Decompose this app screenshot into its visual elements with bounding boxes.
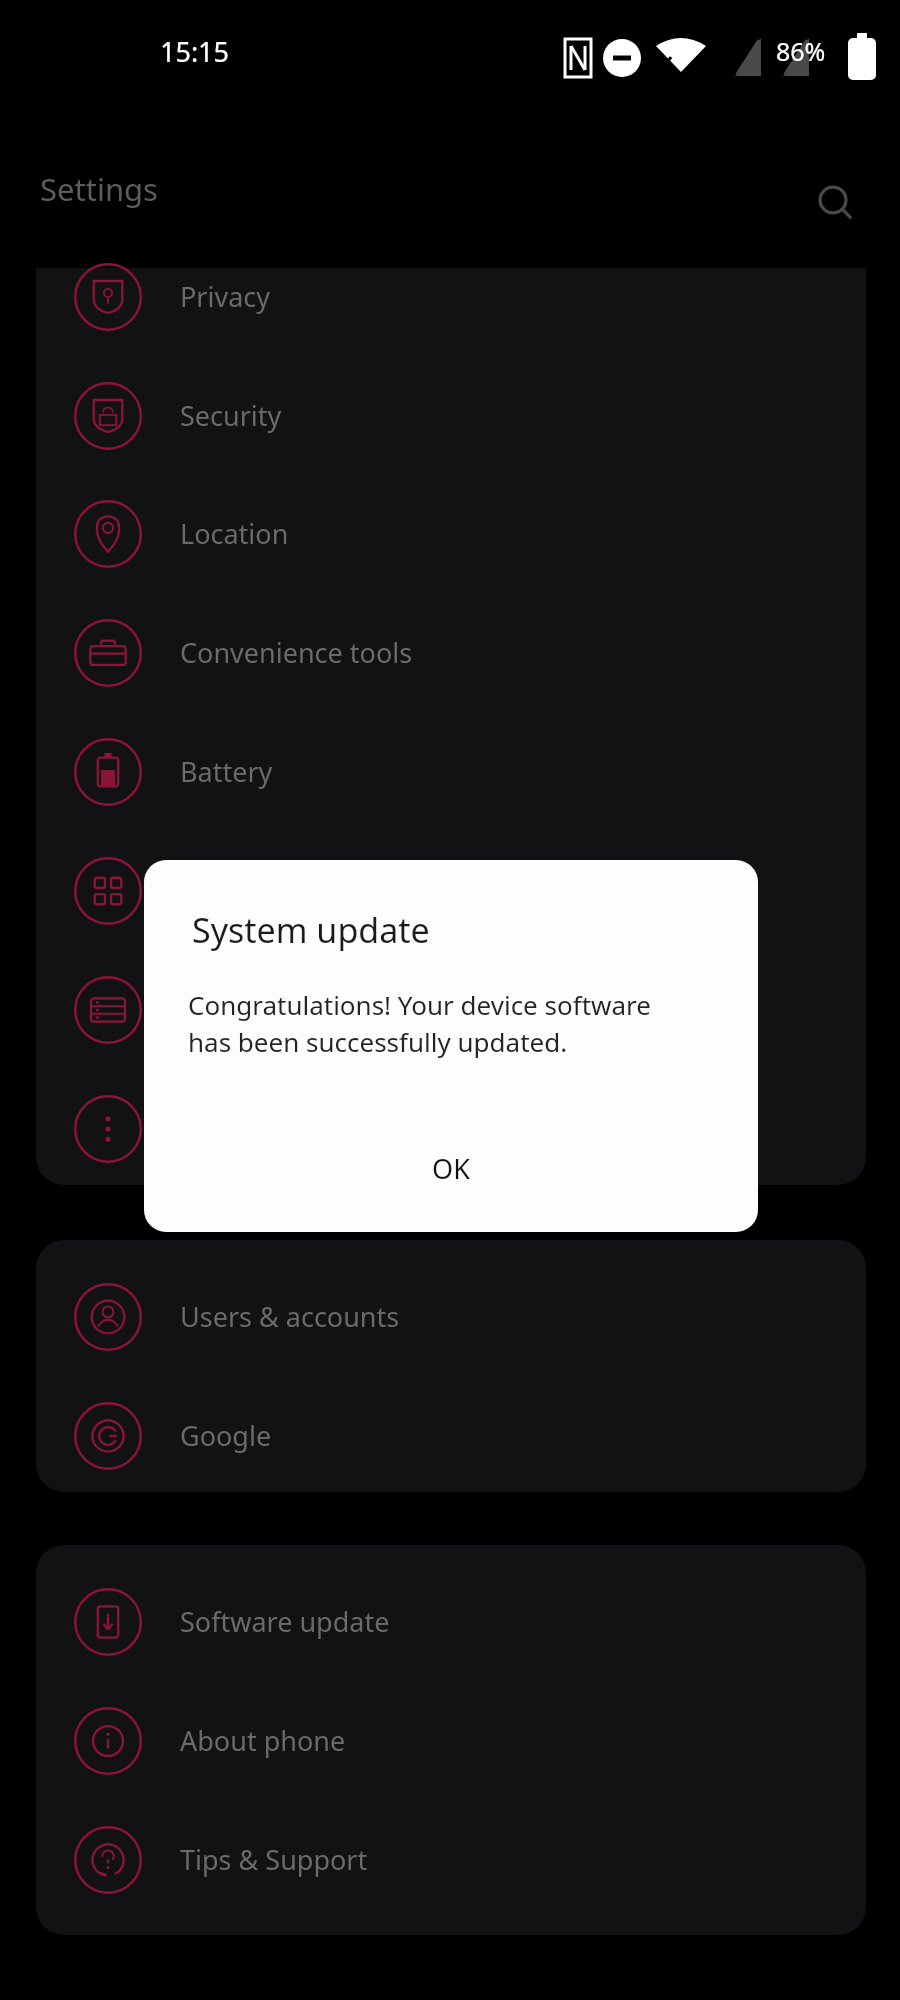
button[interactable]: Security <box>36 356 866 475</box>
button[interactable]: Software update <box>36 1562 866 1681</box>
staticText: Settings <box>40 168 158 210</box>
staticText: Location <box>180 515 289 552</box>
staticText: Privacy <box>180 278 271 315</box>
staticText: System update <box>192 907 430 953</box>
button[interactable]: More <box>36 1069 866 1188</box>
button[interactable]: Search <box>798 165 868 235</box>
button[interactable]: Location <box>36 474 866 593</box>
staticText: 15:15 <box>160 33 230 70</box>
staticText: Users & accounts <box>180 1298 400 1335</box>
staticText: Congratulations! Your device software ha… <box>188 987 728 1060</box>
button[interactable]: Convenience tools <box>36 593 866 712</box>
button[interactable]: Storage <box>36 950 866 1069</box>
button[interactable]: Users & accounts <box>36 1257 866 1376</box>
staticText: Convenience tools <box>180 634 413 671</box>
staticText: Battery <box>180 753 273 790</box>
staticText: Software update <box>180 1603 390 1640</box>
button[interactable]: Google <box>36 1376 866 1495</box>
staticText: Tips & Support <box>180 1841 368 1878</box>
staticText: OK <box>432 1150 470 1187</box>
staticText: Google <box>180 1417 272 1454</box>
staticText: 86% <box>776 34 826 68</box>
staticText: About phone <box>180 1722 346 1759</box>
button[interactable]: Apps <box>36 831 866 950</box>
button[interactable]: About phone <box>36 1681 866 1800</box>
button[interactable]: Battery <box>36 712 866 831</box>
staticText: Security <box>180 397 282 434</box>
button[interactable]: Privacy <box>36 237 866 356</box>
staticText: Storage <box>180 991 279 1028</box>
button[interactable]: OK <box>321 1120 581 1216</box>
button[interactable]: Tips & Support <box>36 1800 866 1919</box>
